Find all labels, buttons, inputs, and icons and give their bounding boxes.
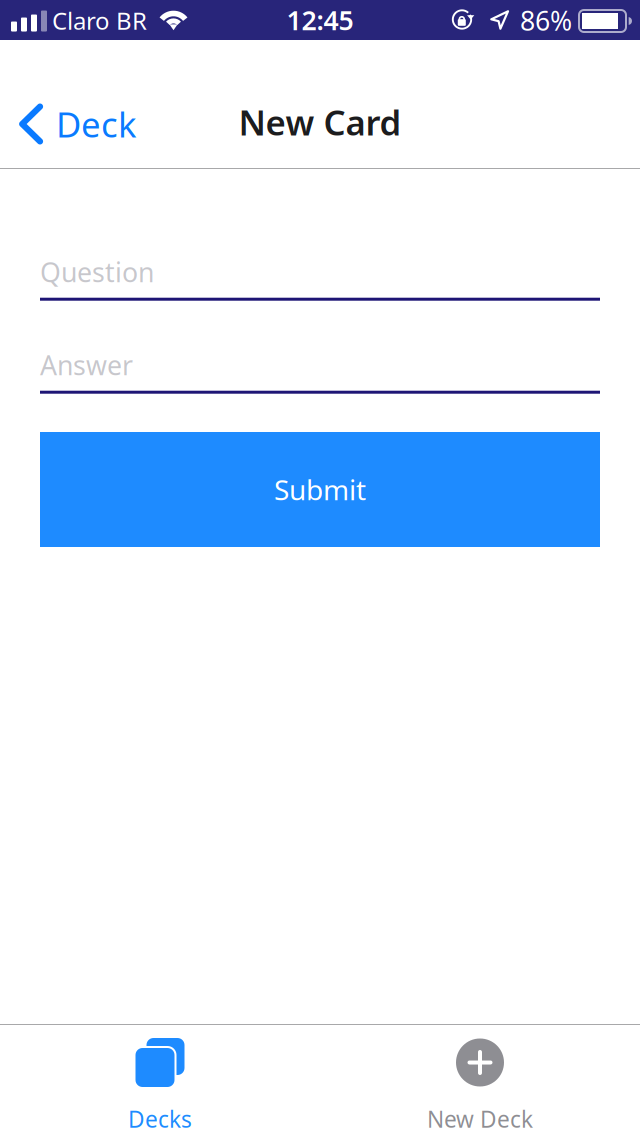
staticText: Question bbox=[40, 254, 154, 290]
button[interactable]: Back to Deck bbox=[0, 84, 151, 168]
staticText: Decks bbox=[128, 1104, 192, 1134]
staticText: Claro BR bbox=[52, 5, 147, 36]
button[interactable]: Answer bbox=[40, 343, 600, 390]
button[interactable]: Submit bbox=[40, 432, 600, 547]
staticText: New Card bbox=[238, 99, 401, 145]
button[interactable]: Question bbox=[40, 250, 600, 297]
button[interactable]: New Deck bbox=[320, 1025, 640, 1136]
staticText: Deck bbox=[56, 101, 137, 147]
staticText: New Deck bbox=[427, 1104, 533, 1134]
staticText: 12:45 bbox=[286, 2, 353, 38]
button[interactable]: Decks bbox=[0, 1025, 320, 1136]
staticText: Answer bbox=[40, 347, 133, 383]
staticText: Submit bbox=[274, 471, 366, 508]
staticText: 86% bbox=[520, 3, 572, 38]
